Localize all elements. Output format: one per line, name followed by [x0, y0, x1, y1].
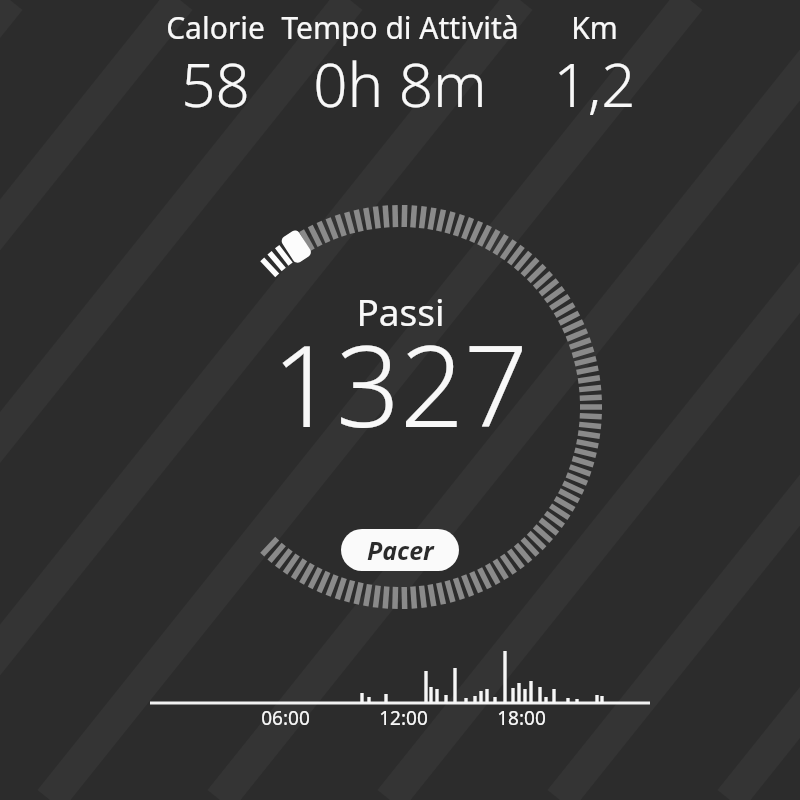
staticText: 12:00: [379, 705, 428, 731]
staticText: 0h 8m: [313, 43, 487, 125]
staticText: Pacer: [367, 533, 434, 567]
staticText: Passi: [356, 286, 445, 336]
staticText: Tempo di Attività: [281, 7, 519, 48]
staticText: Km: [571, 7, 618, 48]
staticText: Calorie: [166, 7, 265, 48]
staticText: 58: [181, 43, 250, 125]
staticText: 1,2: [553, 43, 636, 125]
button[interactable]: Pacer: [341, 529, 459, 571]
staticText: 1327: [272, 307, 528, 460]
staticText: 18:00: [497, 705, 546, 731]
staticText: 06:00: [261, 705, 310, 731]
